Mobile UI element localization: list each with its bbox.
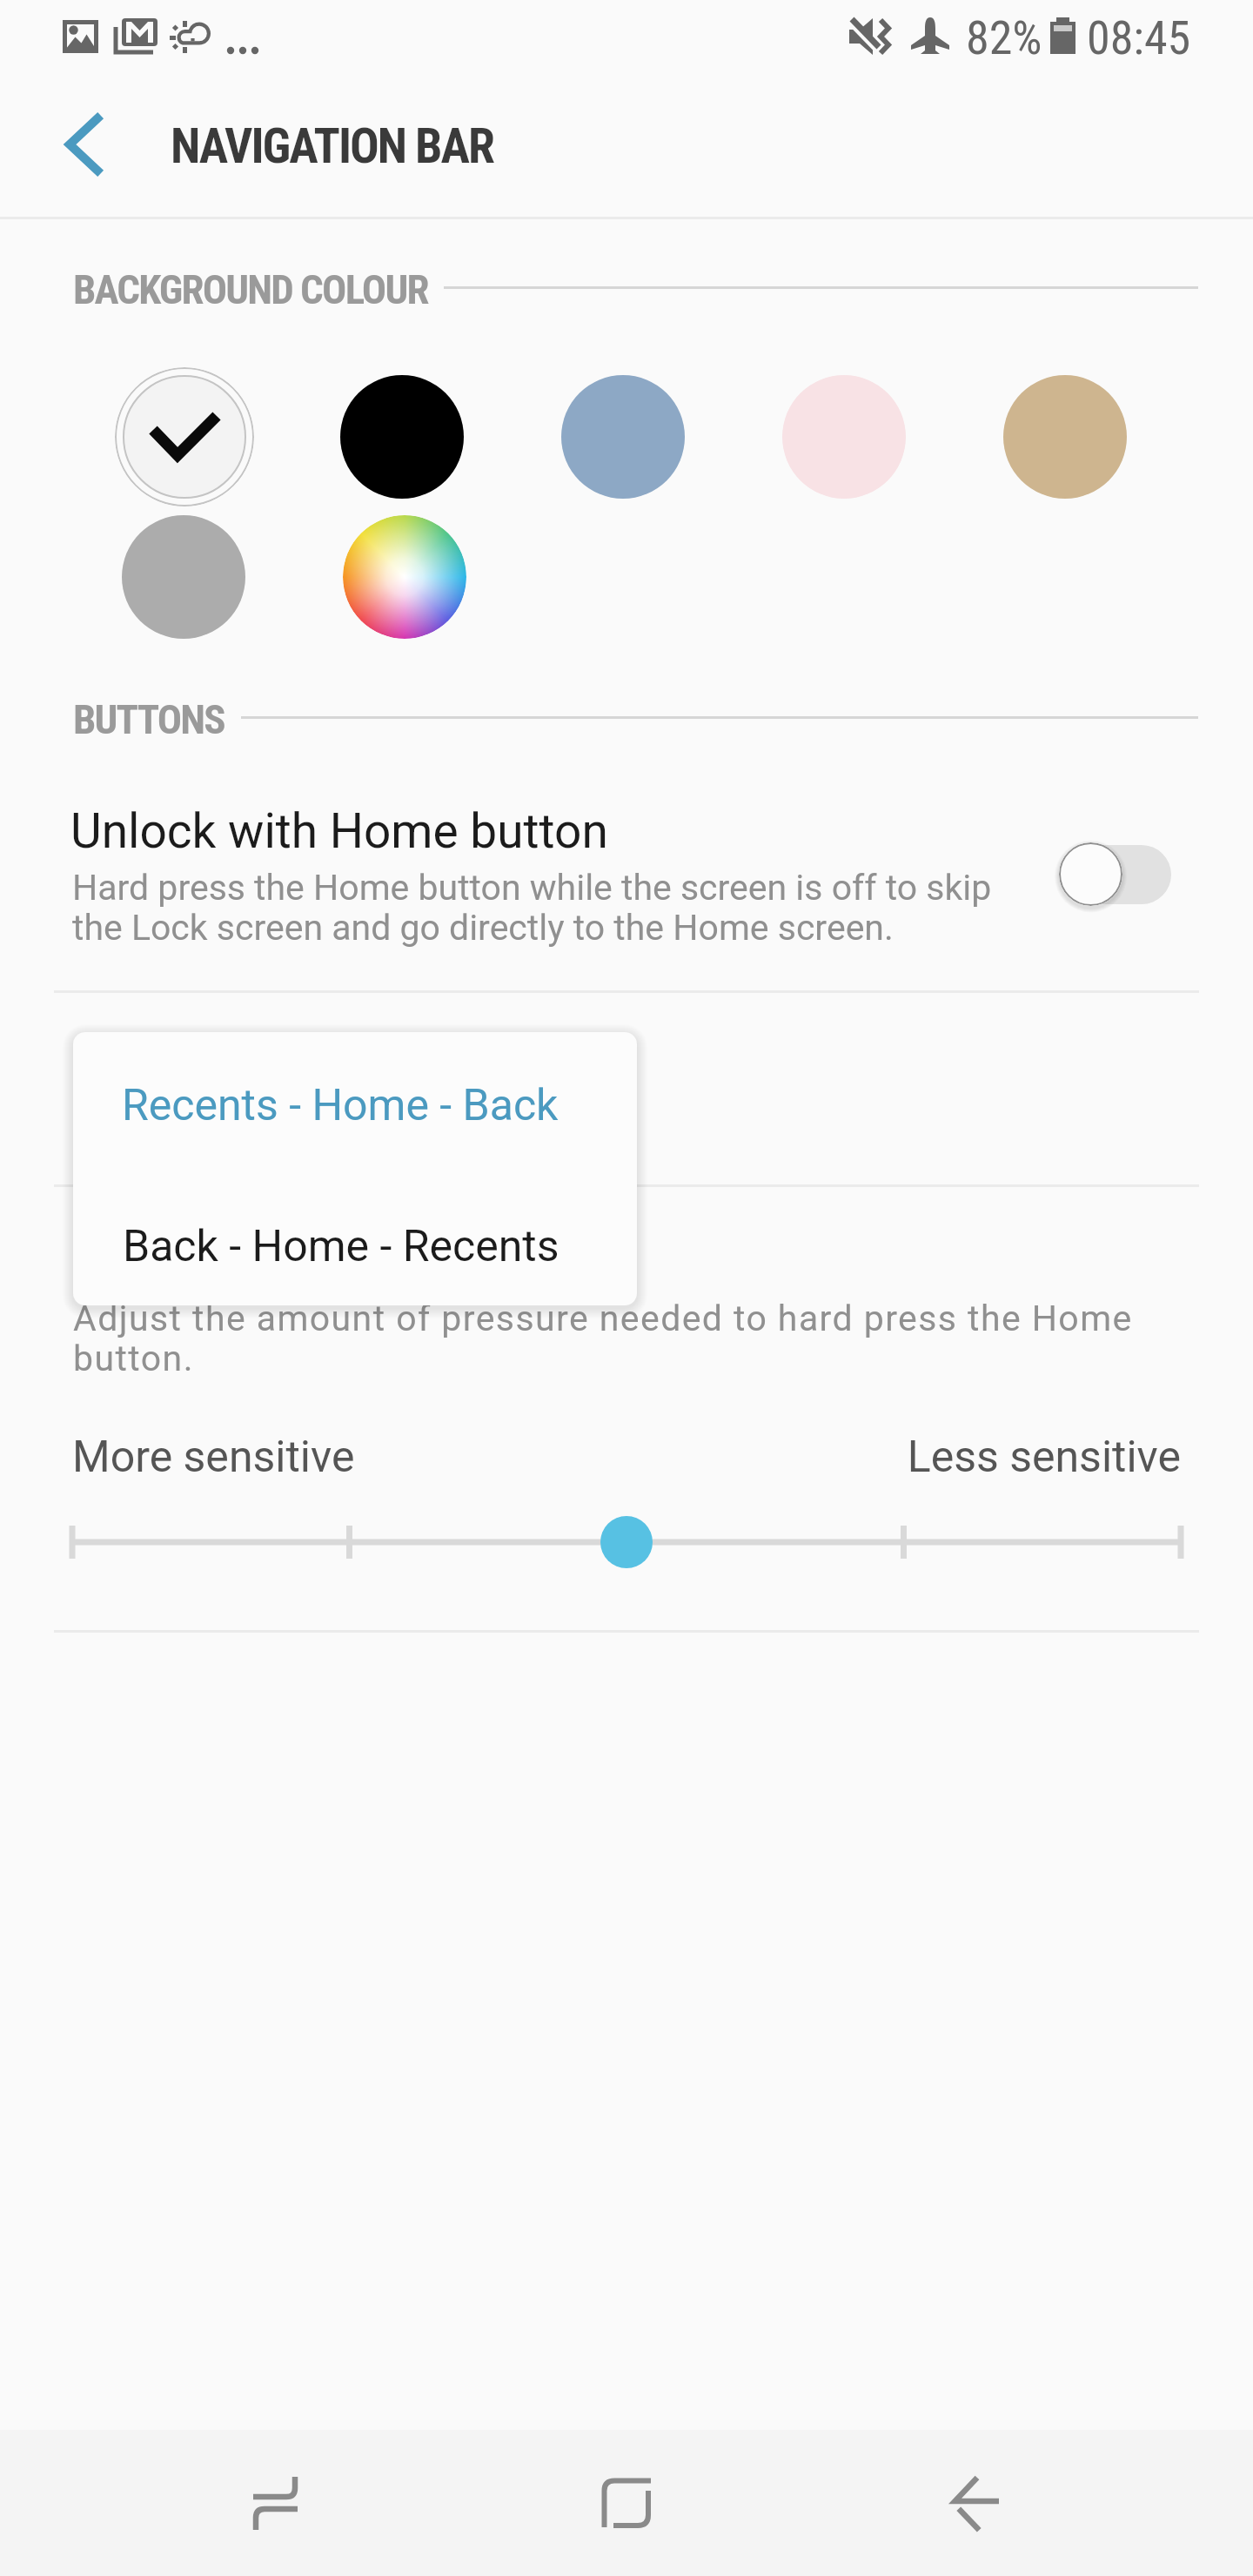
button[interactable]: Back - Home - Recents <box>73 1169 637 1305</box>
button[interactable]: Back <box>898 2442 1055 2564</box>
button[interactable]: Blue <box>561 375 685 499</box>
button[interactable]: Pink <box>782 375 906 499</box>
staticText: 08:45 <box>1087 10 1191 65</box>
button[interactable]: Sensitivity slider <box>0 1507 1253 1577</box>
staticText: Recents - Home - Back <box>122 1080 559 1131</box>
staticText: Less sensitive <box>870 1432 1181 1483</box>
staticText: Back - Home - Recents <box>123 1221 559 1272</box>
button[interactable]: Home <box>548 2442 705 2564</box>
staticText: BUTTONS <box>73 695 224 743</box>
button[interactable]: Navigate up <box>31 101 136 188</box>
staticText: NAVIGATION BAR <box>171 117 493 175</box>
staticText: More sensitive <box>72 1432 355 1483</box>
button[interactable]: Unlock with Home button, off <box>1059 842 1172 907</box>
button[interactable]: Recents - Home - Back <box>73 1032 637 1169</box>
staticText: BACKGROUND COLOUR <box>73 265 428 313</box>
button[interactable]: Unlock with Home button <box>0 783 1253 983</box>
staticText: Hard press the Home button while the scr… <box>72 867 992 949</box>
button[interactable]: Custom colour <box>343 515 466 639</box>
staticText: 82% <box>966 10 1042 65</box>
button[interactable]: Black <box>340 375 464 499</box>
button[interactable]: Default colour, selected <box>115 367 254 506</box>
staticText: Unlock with Home button <box>70 803 608 859</box>
button[interactable]: Tan <box>1003 375 1127 499</box>
staticText: Adjust the amount of pressure needed to … <box>73 1298 1133 1379</box>
button[interactable]: Recents <box>198 2442 354 2564</box>
button[interactable]: Grey <box>122 515 245 639</box>
